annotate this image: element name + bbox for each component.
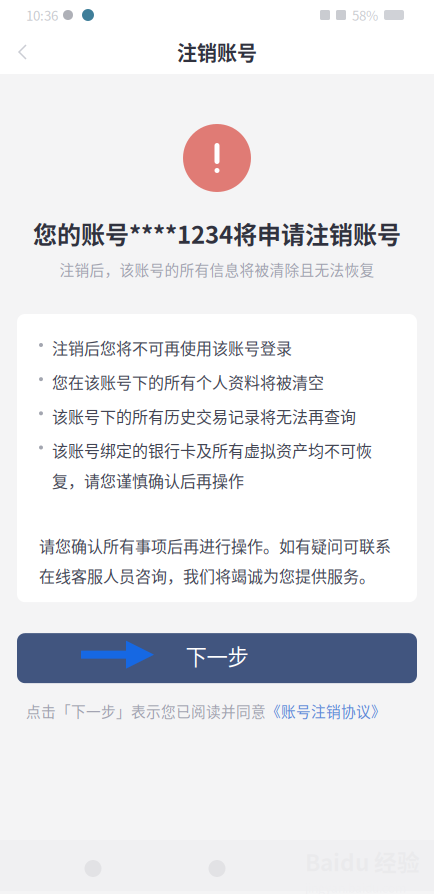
staticText: 58% [352,5,378,25]
staticText: 您的账号****1234将申请注销账号 [33,216,401,251]
button[interactable]: 主屏幕 [186,840,248,894]
staticText: 注销账号 [177,37,257,66]
staticText: 下一步 [185,640,248,671]
staticText: 请您确认所有事项后再进行操作。如有疑问可联系在线客服人员咨询，我们将竭诚为您提供… [39,534,391,587]
button[interactable]: 《账号注销协议》 [266,700,386,721]
button[interactable]: 返回 [0,30,46,74]
button[interactable]: 返回 [62,840,124,894]
button[interactable]: 下一步 [17,633,417,683]
staticText: 该账号绑定的银行卡及所有虚拟资产均不可恢复，请您谨慎确认后再操作 [52,438,372,492]
staticText: 注销后您将不可再使用该账号登录 [52,336,292,359]
staticText: 注销后，该账号的所有信息将被清除且无法恢复 [59,259,374,280]
staticText: 点击「下一步」表示您已阅读并同意 [26,700,266,721]
staticText: 该账号下的所有历史交易记录将无法再查询 [52,404,356,427]
staticText: 您在该账号下的所有个人资料将被清空 [52,370,324,393]
staticText: 10:36 [26,5,58,25]
staticText: 《账号注销协议》 [266,700,386,721]
